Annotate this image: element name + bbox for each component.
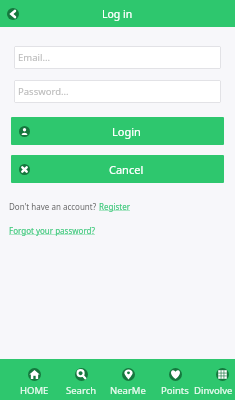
staticText: Dinvolve xyxy=(194,384,233,397)
button[interactable]: NearMe xyxy=(105,359,151,400)
staticText: Login xyxy=(112,124,141,139)
staticText: Log in xyxy=(102,7,133,21)
staticText: Search xyxy=(66,384,97,397)
button[interactable]: Email... xyxy=(14,46,221,69)
button[interactable]: Back xyxy=(7,8,19,20)
staticText: HOME xyxy=(20,384,49,397)
button[interactable]: Points xyxy=(152,359,198,400)
button[interactable]: Forgot your password? xyxy=(9,225,95,236)
button[interactable]: Search xyxy=(58,359,104,400)
staticText: NearMe xyxy=(110,384,146,397)
staticText: Password... xyxy=(18,85,69,98)
button[interactable]: HOME xyxy=(11,359,57,400)
button[interactable]: Dinvolve xyxy=(199,359,235,400)
button[interactable]: Register xyxy=(99,201,131,212)
staticText: Cancel xyxy=(109,162,144,177)
button[interactable]: Login xyxy=(11,117,224,145)
button[interactable]: Cancel xyxy=(11,155,224,183)
staticText: Email... xyxy=(18,51,51,64)
staticText: Don't have an account? xyxy=(9,201,99,212)
button[interactable]: Password... xyxy=(14,80,221,103)
staticText: Points xyxy=(161,384,189,397)
